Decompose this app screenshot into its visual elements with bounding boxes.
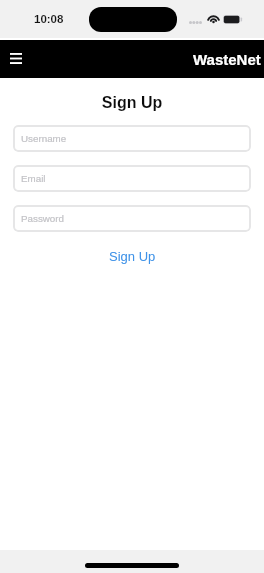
button[interactable]: Username — [13, 125, 251, 152]
button[interactable]: Email — [13, 165, 251, 192]
staticText: Password — [21, 213, 65, 224]
button[interactable]: Menu — [2, 43, 30, 73]
staticText: 10:08 — [34, 13, 64, 26]
button[interactable]: Sign Up — [103, 249, 162, 264]
staticText: Username — [21, 133, 67, 144]
staticText: Sign Up — [109, 249, 156, 264]
button[interactable]: Password — [13, 205, 251, 232]
staticText: Sign Up — [0, 94, 264, 112]
staticText: WasteNet — [193, 51, 261, 68]
staticText: Email — [21, 173, 46, 184]
